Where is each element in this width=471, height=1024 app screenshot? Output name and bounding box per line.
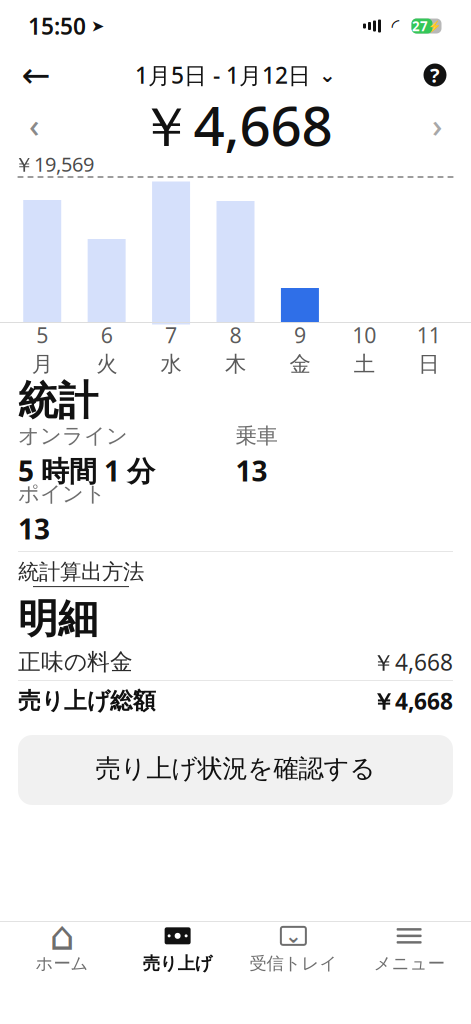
- staticText: ￥4,668: [372, 686, 453, 716]
- staticText: ポイント: [18, 481, 106, 507]
- staticText: 統計算出方法: [18, 559, 144, 585]
- button[interactable]: ⌄: [235, 922, 351, 976]
- button[interactable]: ⌂: [4, 922, 120, 976]
- staticText: 明細: [18, 594, 98, 643]
- staticText: 1月5日 - 1月12日: [135, 60, 311, 90]
- staticText: 5: [36, 321, 48, 349]
- staticText: 統計: [18, 376, 98, 425]
- staticText: 10: [352, 321, 376, 349]
- staticText: 火: [96, 351, 117, 377]
- button[interactable]: ヘルプ: [413, 53, 457, 97]
- staticText: 売り上げ: [143, 953, 213, 974]
- staticText: ‹: [29, 104, 39, 146]
- staticText: メニュー: [374, 953, 445, 974]
- staticText: ➤: [91, 17, 104, 35]
- staticText: 13: [235, 452, 267, 489]
- staticText: 受信トレイ: [249, 953, 337, 974]
- staticText: ◜: [391, 15, 399, 37]
- staticText: ⌂: [49, 913, 74, 959]
- button[interactable]: 1月5日 - 1月12日: [127, 53, 344, 97]
- staticText: 5 時間 1 分: [18, 452, 155, 489]
- staticText: 11: [417, 321, 441, 349]
- staticText: 7: [165, 321, 177, 349]
- staticText: ￥4,668: [138, 89, 332, 161]
- staticText: 月: [32, 351, 53, 377]
- button[interactable]: 前の週: [14, 100, 54, 150]
- button[interactable]: 統計算出方法: [18, 552, 453, 594]
- staticText: ›: [432, 104, 442, 146]
- staticText: 日: [418, 351, 439, 377]
- staticText: 6: [101, 321, 113, 349]
- staticText: 8: [229, 321, 241, 349]
- staticText: 売り上げ状況を確認する: [95, 753, 375, 784]
- staticText: ￥19,569: [14, 151, 94, 177]
- staticText: 9: [294, 321, 306, 349]
- staticText: 売り上げ総額: [18, 687, 156, 715]
- button[interactable]: 次の週: [417, 100, 457, 150]
- staticText: 正味の料金: [18, 648, 133, 676]
- staticText: 水: [161, 351, 182, 377]
- button[interactable]: 売り上げ: [120, 922, 236, 976]
- staticText: 金: [289, 351, 310, 377]
- staticText: 木: [225, 351, 246, 377]
- button[interactable]: メニュー: [351, 922, 467, 976]
- staticText: 15:50: [28, 11, 86, 41]
- button[interactable]: 売り上げ状況を確認する: [18, 735, 453, 805]
- staticText: ?: [430, 62, 440, 88]
- staticText: ⌄: [285, 924, 302, 947]
- staticText: 乗車: [235, 423, 277, 449]
- staticText: 27: [412, 17, 428, 35]
- staticText: オンライン: [18, 423, 128, 449]
- staticText: ホーム: [35, 953, 88, 974]
- staticText: 土: [354, 351, 375, 377]
- button[interactable]: 戻る: [14, 53, 58, 97]
- staticText: ￥4,668: [372, 647, 453, 677]
- staticText: ⌄: [319, 64, 336, 86]
- staticText: ⚡: [428, 20, 441, 32]
- staticText: ←: [21, 55, 50, 95]
- staticText: 13: [18, 510, 50, 547]
